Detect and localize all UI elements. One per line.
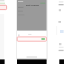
button[interactable]: Field xyxy=(0,5,7,10)
staticText: Edit profile xyxy=(26,3,40,6)
button[interactable]: Action xyxy=(40,2,46,5)
button[interactable]: Email field xyxy=(17,36,47,42)
